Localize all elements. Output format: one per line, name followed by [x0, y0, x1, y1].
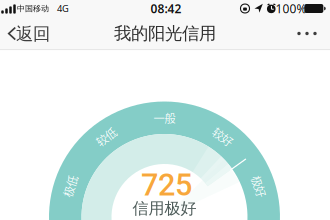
staticText: 返回 — [16, 23, 50, 45]
staticText: 我的阳光信用 — [114, 23, 216, 44]
staticText: 4G — [57, 2, 69, 15]
staticText: 较低 — [95, 128, 117, 145]
staticText: 较好 — [212, 128, 234, 145]
staticText: 极好 — [248, 178, 270, 194]
staticText: 中国移动 — [17, 4, 49, 13]
staticText: 信用极好 — [132, 199, 196, 218]
staticText: 100% — [275, 0, 306, 16]
button[interactable]: 返回 — [0, 17, 56, 50]
staticText: 08:42 — [150, 0, 181, 16]
staticText: 极低 — [59, 178, 81, 194]
staticText: 725 — [141, 167, 192, 203]
staticText: 一般 — [153, 109, 175, 126]
button[interactable]: 更多 — [290, 17, 324, 50]
